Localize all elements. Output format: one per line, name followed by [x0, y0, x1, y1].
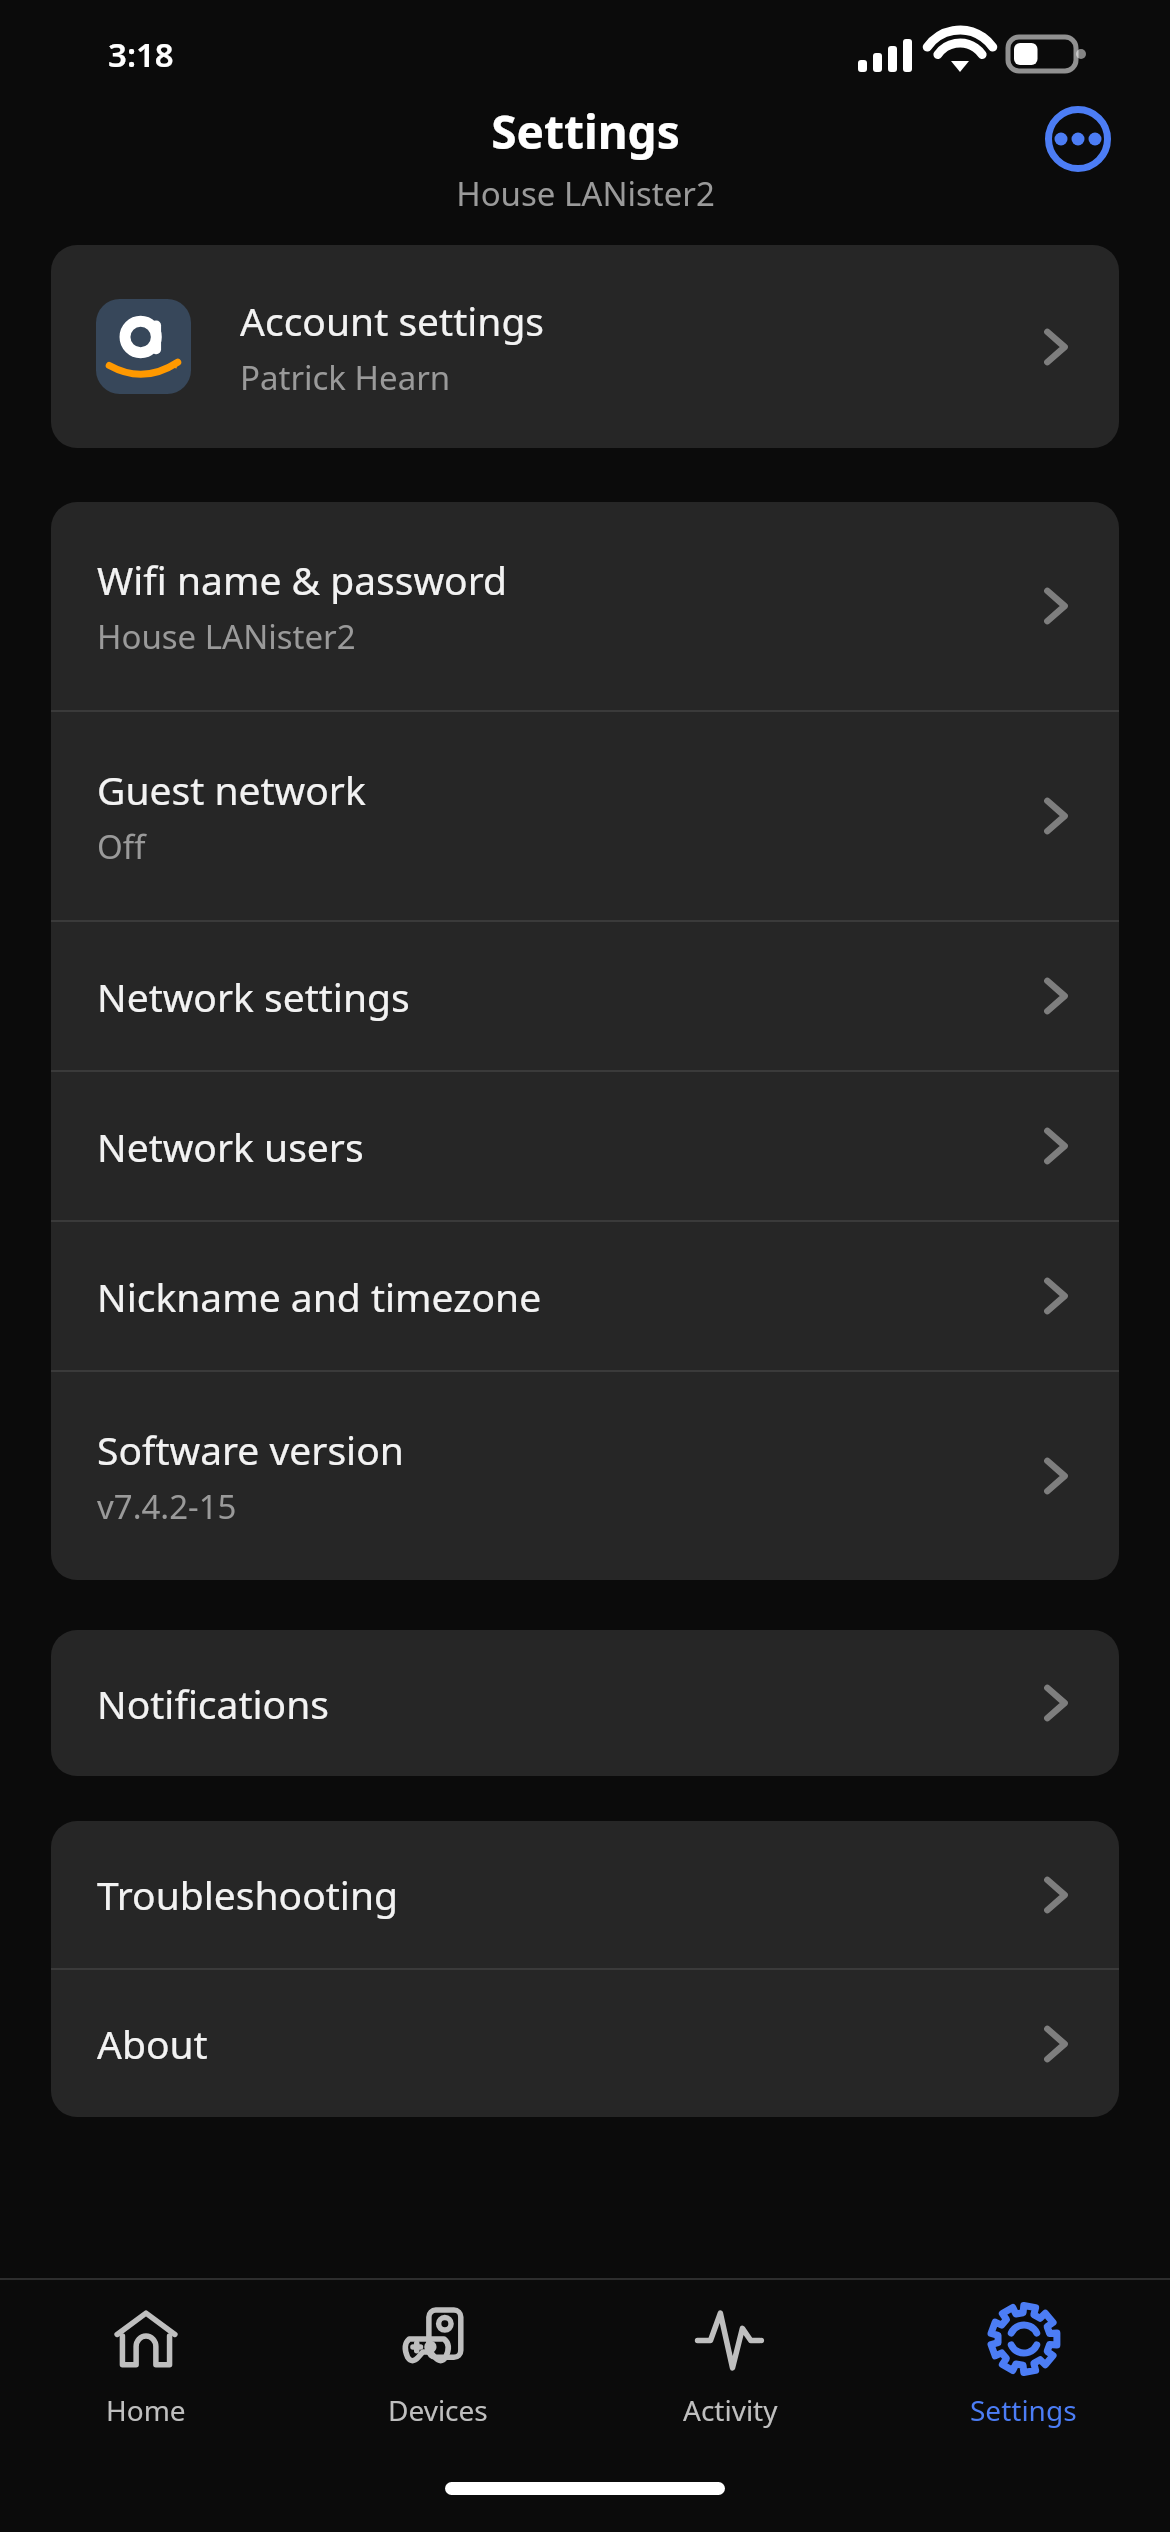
button[interactable]: Devices	[292, 2280, 584, 2450]
staticText: Guest network	[97, 763, 366, 816]
staticText: Settings	[491, 100, 680, 163]
staticText: Home	[106, 2391, 186, 2429]
button[interactable]: Software version	[51, 1372, 1119, 1580]
button[interactable]: Nickname and timezone	[51, 1222, 1119, 1370]
button[interactable]: Notifications	[51, 1630, 1119, 1776]
button[interactable]: Account settings	[51, 245, 1119, 448]
button[interactable]: Home	[0, 2280, 292, 2450]
button[interactable]: More options	[1044, 105, 1112, 173]
staticText: Network users	[97, 1120, 364, 1173]
staticText: Off	[97, 824, 146, 869]
button[interactable]: About	[51, 1970, 1119, 2117]
button[interactable]: Activity	[584, 2280, 877, 2450]
staticText: Wifi name & password	[97, 553, 508, 606]
staticText: 3:18	[108, 32, 174, 77]
staticText: Patrick Hearn	[240, 355, 451, 400]
staticText: Software version	[97, 1423, 404, 1476]
staticText: Activity	[683, 2391, 778, 2429]
staticText: Troubleshooting	[97, 1868, 399, 1921]
staticText: House LANister2	[97, 614, 356, 659]
button[interactable]: Guest network	[51, 712, 1119, 920]
staticText: Nickname and timezone	[97, 1270, 542, 1323]
staticText: Devices	[388, 2391, 488, 2429]
button[interactable]: Troubleshooting	[51, 1821, 1119, 1968]
staticText: Settings	[970, 2391, 1077, 2429]
staticText: About	[97, 2017, 208, 2070]
button[interactable]: Network settings	[51, 922, 1119, 1070]
button[interactable]: Wifi name & password	[51, 502, 1119, 710]
button[interactable]: Network users	[51, 1072, 1119, 1220]
staticText: Account settings	[240, 294, 545, 347]
staticText: House LANister2	[456, 171, 715, 216]
button[interactable]: Settings	[877, 2280, 1170, 2450]
staticText: Network settings	[97, 970, 410, 1023]
staticText: Notifications	[97, 1677, 329, 1730]
staticText: v7.4.2-15	[97, 1484, 237, 1529]
